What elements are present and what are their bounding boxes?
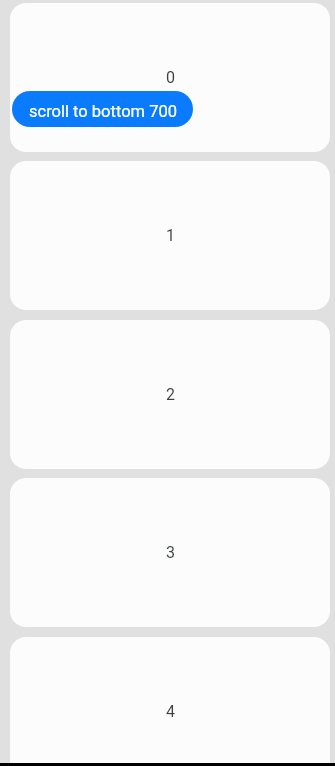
staticText: 3	[166, 543, 175, 562]
staticText: 1	[166, 226, 175, 245]
button[interactable]: 2	[10, 320, 330, 469]
button[interactable]: 0	[10, 3, 330, 152]
button[interactable]: 3	[10, 478, 330, 627]
button[interactable]: 4	[10, 637, 330, 766]
staticText: 2	[166, 385, 175, 404]
staticText: scroll to bottom 700	[29, 102, 177, 121]
staticText: 0	[166, 68, 175, 87]
button[interactable]: scroll to bottom 700	[12, 91, 193, 127]
button[interactable]: 1	[10, 161, 330, 310]
staticText: 4	[166, 702, 175, 721]
